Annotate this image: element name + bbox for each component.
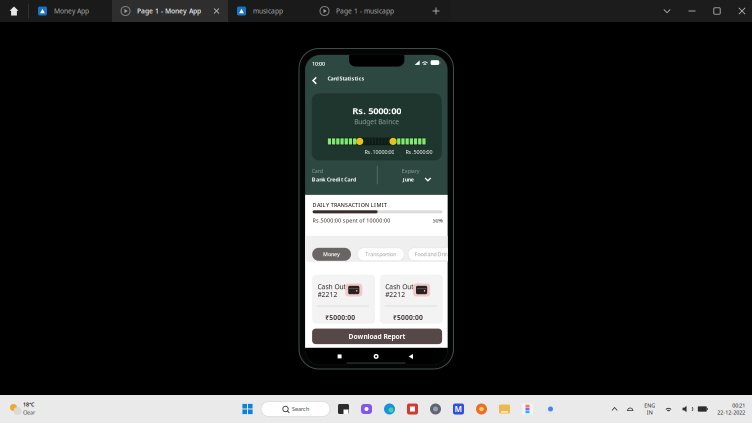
staticText: 18°C: [23, 401, 34, 408]
staticText: IN: [647, 409, 653, 416]
button[interactable]: Start: [238, 398, 257, 420]
button[interactable]: Money: [312, 248, 351, 261]
staticText: Cash Out: [317, 282, 345, 291]
button[interactable]: Home: [0, 0, 28, 22]
staticText: 00:21: [732, 402, 745, 409]
staticText: Search: [292, 405, 309, 413]
staticText: Clear: [23, 409, 35, 416]
staticText: #2212: [385, 290, 405, 299]
staticText: Bank Credit Card: [312, 176, 356, 183]
button[interactable]: New Tab: [421, 0, 451, 22]
staticText: 22-12-2022: [717, 409, 745, 416]
button[interactable]: Back: [308, 74, 322, 88]
button[interactable]: Tab actions: [652, 0, 682, 22]
staticText: Budget Balnce: [354, 117, 399, 126]
button[interactable]: Maximize: [702, 0, 732, 22]
staticText: Transportion: [365, 251, 396, 258]
button[interactable]: Figma: [518, 398, 537, 420]
staticText: Money: [323, 251, 340, 258]
staticText: June: [403, 176, 414, 183]
button[interactable]: Chat: [357, 398, 376, 420]
button[interactable]: Firefox: [472, 398, 491, 420]
button[interactable]: musicapp: [228, 0, 311, 22]
staticText: ₹5000:00: [325, 313, 355, 322]
staticText: Rs. 5000:00: [406, 148, 433, 155]
staticText: Page 1 - musicapp: [336, 7, 394, 15]
button[interactable]: Weather: [8, 398, 68, 420]
staticText: Money App: [54, 7, 89, 15]
button[interactable]: Minimize: [677, 0, 707, 22]
button[interactable]: Close: [727, 0, 752, 22]
staticText: M: [454, 404, 462, 414]
button[interactable]: Folder: [495, 398, 514, 420]
staticText: Rs. 10000:00: [364, 148, 394, 155]
button[interactable]: Search: [261, 398, 330, 420]
button[interactable]: File Explorer: [334, 398, 353, 420]
staticText: ₹5000:00: [393, 313, 423, 322]
staticText: Page 1 - Money App: [137, 7, 201, 15]
staticText: 50%: [433, 217, 443, 224]
button[interactable]: Food and Drinks: [408, 248, 460, 261]
button[interactable]: Edge: [380, 398, 399, 420]
staticText: Food and Drinks: [414, 251, 453, 258]
staticText: Card: [312, 167, 323, 174]
button[interactable]: Download Report: [312, 329, 442, 344]
button[interactable]: Package: [426, 398, 445, 420]
staticText: DAILY TRANSACTION LIMIT: [313, 201, 387, 209]
button[interactable]: Transportion: [357, 248, 404, 261]
button[interactable]: VS: [449, 398, 468, 420]
staticText: Rs. 5000:00: [352, 104, 401, 117]
staticText: Cash Out: [385, 282, 413, 291]
button[interactable]: Page 1 - Money App: [112, 0, 228, 22]
staticText: Card Statistics: [327, 75, 364, 82]
staticText: #2212: [317, 290, 337, 299]
staticText: Expiary: [402, 167, 420, 174]
staticText: Download Report: [349, 332, 406, 341]
button[interactable]: Chrome: [541, 398, 560, 420]
button[interactable]: Store: [403, 398, 422, 420]
button[interactable]: Page 1 - musicapp: [311, 0, 421, 22]
staticText: 10:00: [312, 60, 325, 67]
staticText: Rs.5000:00 spent of 10000:00: [313, 217, 390, 224]
staticText: musicapp: [253, 7, 283, 15]
button[interactable]: Money App: [29, 0, 112, 22]
staticText: ENG: [644, 402, 655, 409]
